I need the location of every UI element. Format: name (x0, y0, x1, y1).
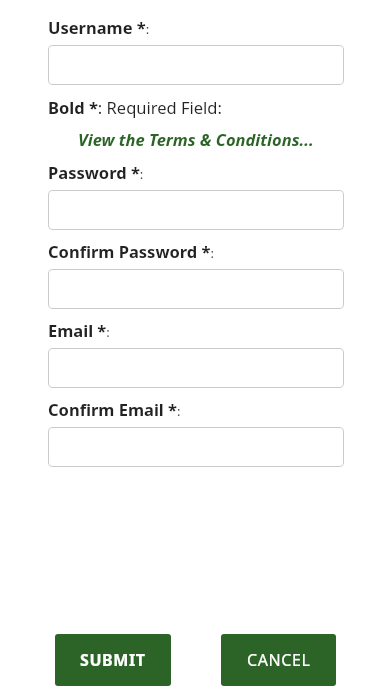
staticText: View the Terms & Conditions... (78, 128, 314, 150)
staticText: CANCEL (247, 649, 311, 671)
staticText: SUBMIT (80, 649, 146, 671)
staticText: Password *: (48, 161, 144, 183)
button[interactable]: View the Terms & Conditions... (48, 128, 344, 150)
staticText: Confirm Email *: (48, 398, 181, 420)
button[interactable]: CANCEL (221, 634, 336, 686)
button[interactable] (48, 45, 344, 85)
button[interactable] (48, 190, 344, 230)
staticText: Email *: (48, 319, 110, 341)
staticText: Confirm Password *: (48, 240, 215, 262)
button[interactable]: SUBMIT (55, 634, 171, 686)
button[interactable] (48, 348, 344, 388)
button[interactable] (48, 269, 344, 309)
staticText: Username *: (48, 16, 150, 38)
button[interactable] (48, 427, 344, 467)
staticText: Bold *: Required Field: (48, 96, 222, 118)
